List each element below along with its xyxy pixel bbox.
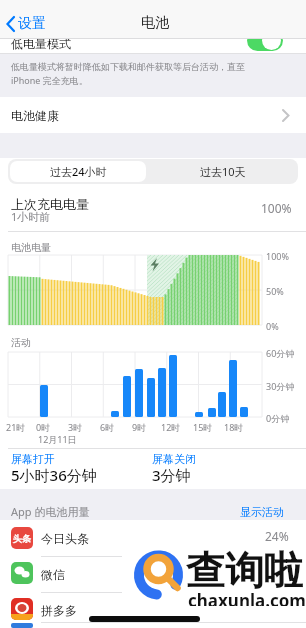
button[interactable] <box>0 557 306 592</box>
staticText: 今日头条 <box>41 531 89 546</box>
button[interactable]: 设置 <box>4 14 56 34</box>
button[interactable] <box>10 161 146 182</box>
staticText: 微信 <box>41 567 65 582</box>
staticText: 6时 <box>100 421 115 432</box>
staticText: 上次充电电量 <box>11 196 89 212</box>
staticText: 屏幕关闭 <box>152 452 196 466</box>
staticText: 100% <box>266 250 289 262</box>
staticText: 21时 <box>6 421 26 432</box>
staticText: 15时 <box>193 421 213 432</box>
button[interactable]: 过去10天 <box>150 161 296 182</box>
staticText: 24% <box>265 528 289 544</box>
staticText: 3时 <box>68 421 83 432</box>
staticText: chaxunla.com <box>188 589 306 606</box>
staticText: 头条 <box>13 533 31 544</box>
button[interactable]: 显示活动 <box>124 501 284 522</box>
staticText: 查询啦 <box>186 546 303 590</box>
staticText: 3分钟 <box>152 465 191 485</box>
staticText: 设置 <box>18 15 46 33</box>
button[interactable] <box>0 521 306 556</box>
staticText: 60分钟 <box>266 347 295 359</box>
staticText: 过去10天 <box>200 164 246 179</box>
staticText: 低电量模式将暂时降低如下载和邮件获取等后台活动，直至 <box>11 61 245 72</box>
button[interactable] <box>0 593 306 628</box>
staticText: 屏幕打开 <box>11 452 55 466</box>
staticText: 0时 <box>36 421 51 432</box>
staticText: 50% <box>266 285 284 297</box>
staticText: 0% <box>266 320 279 332</box>
staticText: 0分钟 <box>266 412 290 424</box>
staticText: 12时 <box>161 421 181 432</box>
staticText: 低电量模式 <box>11 36 71 51</box>
staticText: 活动 <box>11 336 31 349</box>
staticText: 过去24小时 <box>50 164 107 179</box>
button[interactable] <box>247 30 283 51</box>
staticText: 5小时36分钟 <box>11 465 97 485</box>
staticText: 电池电量 <box>11 241 51 254</box>
staticText: 100% <box>261 200 292 216</box>
staticText: 9时 <box>132 421 147 432</box>
staticText: 拼多多 <box>41 603 77 618</box>
staticText: 显示活动 <box>240 505 284 519</box>
staticText: 12月11日 <box>38 433 77 445</box>
staticText: 电池健康 <box>11 108 59 123</box>
staticText: 电池 <box>141 14 169 32</box>
button[interactable] <box>0 97 306 133</box>
staticText: App 的电池用量 <box>11 504 90 519</box>
staticText: 18时 <box>224 421 244 432</box>
staticText: iPhone 完全充电。 <box>11 74 88 86</box>
staticText: 1小时前 <box>11 209 51 224</box>
staticText: 30分钟 <box>266 380 295 392</box>
